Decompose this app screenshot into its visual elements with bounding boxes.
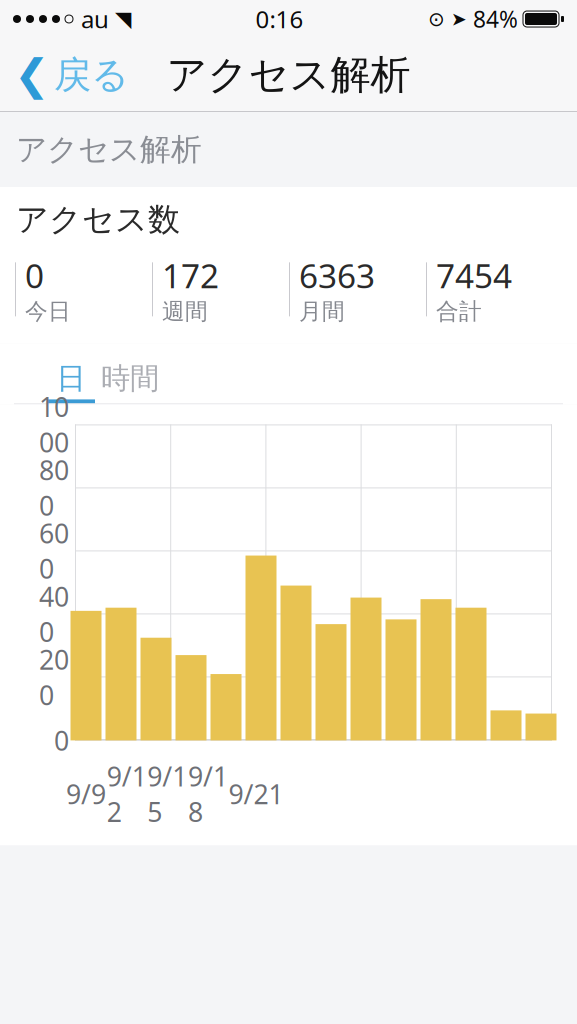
- staticText: 時間: [101, 360, 159, 396]
- staticText: 戻る: [54, 52, 129, 98]
- staticText: 週間: [162, 298, 208, 325]
- staticText: 6363: [299, 253, 375, 298]
- staticText: 日: [56, 360, 85, 396]
- staticText: ◥: [115, 7, 131, 31]
- staticText: 9/15: [147, 758, 187, 829]
- staticText: 400: [39, 579, 69, 649]
- staticText: 合計: [436, 298, 482, 325]
- staticText: 7454: [436, 253, 512, 298]
- staticText: 0: [25, 253, 44, 298]
- staticText: 月間: [299, 298, 345, 325]
- staticText: ⊙: [428, 8, 445, 30]
- staticText: 9/9: [66, 776, 106, 811]
- staticText: アクセス解析: [16, 131, 202, 168]
- staticText: アクセス解析: [166, 50, 410, 99]
- staticText: 9/18: [188, 758, 228, 829]
- staticText: 200: [39, 642, 69, 713]
- staticText: アクセス数: [16, 200, 180, 239]
- button[interactable]: 時間: [95, 357, 165, 403]
- staticText: ❮: [14, 51, 50, 99]
- staticText: 9/21: [228, 776, 283, 811]
- staticText: ➤: [451, 8, 467, 30]
- staticText: 600: [39, 515, 69, 586]
- staticText: 0: [54, 723, 69, 758]
- staticText: 84%: [473, 4, 518, 34]
- button[interactable]: ❮: [0, 38, 143, 112]
- button[interactable]: 日: [47, 357, 95, 403]
- staticText: 1000: [39, 389, 69, 460]
- staticText: 今日: [25, 298, 71, 325]
- staticText: 0:16: [255, 3, 303, 35]
- staticText: 800: [39, 452, 69, 523]
- staticText: 9/12: [107, 758, 147, 829]
- staticText: 172: [162, 253, 219, 298]
- staticText: au: [81, 3, 109, 35]
